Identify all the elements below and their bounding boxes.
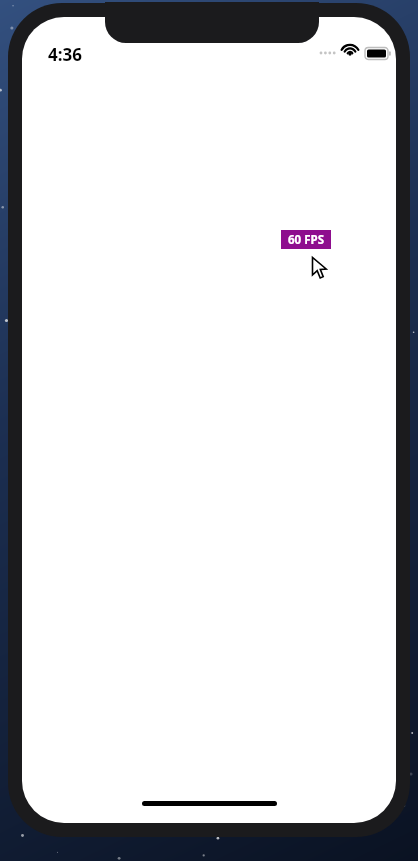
button[interactable]: 60 FPS: [281, 230, 331, 249]
other: Pointer: [311, 257, 329, 281]
staticText: 60 FPS: [288, 232, 324, 248]
staticText: 4:36: [48, 43, 82, 66]
